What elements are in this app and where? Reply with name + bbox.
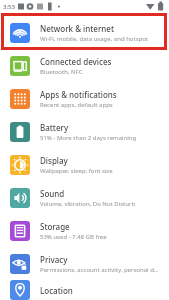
staticText: Battery <box>40 122 69 133</box>
staticText: Sound <box>40 188 65 199</box>
other: Display <box>10 155 30 175</box>
button[interactable]: Network & internet <box>0 16 169 49</box>
button[interactable]: Sound <box>0 181 169 214</box>
button[interactable]: Privacy <box>0 247 169 280</box>
staticText: Wallpaper, sleep, font size <box>40 167 113 175</box>
button[interactable]: Connected devices <box>0 49 169 82</box>
staticText: Privacy <box>40 254 68 265</box>
staticText: Storage <box>40 221 70 232</box>
staticText: Network & internet <box>40 23 115 34</box>
staticText: Bluetooth, NFC <box>40 68 83 76</box>
staticText: 53% used - 7.48 GB free <box>40 233 107 241</box>
staticText: Location <box>40 285 73 296</box>
button[interactable]: Apps & notifications <box>0 82 169 115</box>
other: Connected devices <box>10 56 30 76</box>
staticText: Connected devices <box>40 56 112 67</box>
staticText: Display <box>40 155 68 166</box>
other: Sound <box>10 188 30 208</box>
other: Apps & notifications <box>10 89 30 109</box>
button[interactable]: Location <box>0 280 169 300</box>
staticText: Apps & notifications <box>40 89 117 100</box>
staticText: Permissions, account activity, personal … <box>40 266 161 274</box>
staticText: 3:53 <box>3 3 15 11</box>
button[interactable]: Display <box>0 148 169 181</box>
other: Network & internet <box>10 23 30 43</box>
staticText: Recent apps, default apps <box>40 101 113 109</box>
other: Privacy <box>10 254 30 274</box>
other: Location <box>10 280 30 300</box>
other: Storage <box>10 221 30 241</box>
button[interactable]: Battery <box>0 115 169 148</box>
staticText: 51% - More than 2 days remaining <box>40 134 137 142</box>
staticText: Wi-Fi, mobile, data usage, and hotspot <box>40 35 148 43</box>
button[interactable]: Storage <box>0 214 169 247</box>
staticText: Volume, vibration, Do Not Disturb <box>40 200 136 208</box>
other: Battery <box>10 122 30 142</box>
